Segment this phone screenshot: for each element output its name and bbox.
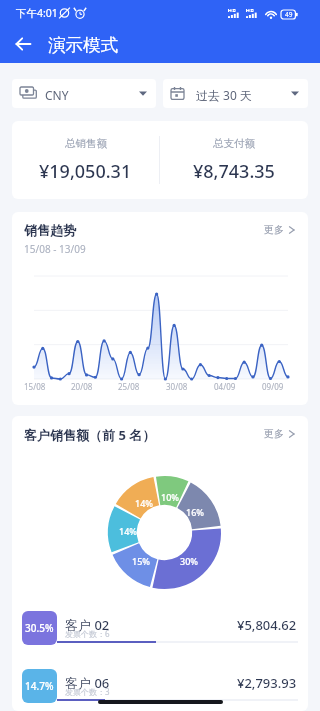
staticText: 49 bbox=[285, 10, 293, 19]
button[interactable]: 总支付额 bbox=[160, 137, 308, 184]
staticText: 更多 bbox=[264, 427, 284, 440]
staticText: 15% bbox=[132, 555, 150, 567]
button[interactable]: 销售趋势 bbox=[12, 212, 308, 256]
staticText: ¥8,743.35 bbox=[193, 159, 275, 184]
staticText: 过去 30 天 bbox=[196, 87, 252, 103]
staticText: 30.5% bbox=[25, 621, 54, 635]
staticText: 10% bbox=[161, 491, 179, 503]
button[interactable]: CNY bbox=[12, 79, 156, 108]
staticText: 30% bbox=[180, 555, 198, 567]
staticText: 15/08 - 13/09 bbox=[24, 242, 86, 256]
staticText: 04/09 bbox=[214, 381, 236, 392]
button[interactable]: 过去 30 天 bbox=[163, 79, 308, 108]
staticText: 更多 bbox=[264, 223, 284, 236]
staticText: ¥2,793.93 bbox=[237, 674, 297, 692]
staticText: 25/08 bbox=[118, 381, 140, 392]
staticText: 30/08 bbox=[166, 381, 188, 392]
staticText: CNY bbox=[45, 87, 69, 103]
staticText: 总支付额 bbox=[213, 137, 255, 150]
staticText: 总销售额 bbox=[65, 137, 107, 150]
button[interactable]: 14.7% bbox=[12, 660, 308, 711]
button[interactable]: 客户销售额（前 5 名） bbox=[12, 416, 308, 444]
button[interactable]: 总销售额 bbox=[12, 137, 159, 184]
staticText: 发票个数：6 bbox=[65, 628, 110, 639]
button[interactable]: 30.5% bbox=[12, 602, 308, 653]
staticText: 20/08 bbox=[71, 381, 93, 392]
staticText: 14% bbox=[135, 497, 153, 509]
staticText: 下午4:01 bbox=[16, 6, 58, 20]
staticText: 客户销售额（前 5 名） bbox=[24, 426, 156, 444]
staticText: ¥19,050.31 bbox=[39, 159, 132, 184]
staticText: 14.7% bbox=[25, 679, 54, 693]
staticText: 客户 02 bbox=[65, 616, 110, 634]
staticText: 14% bbox=[119, 525, 137, 537]
staticText: 16% bbox=[186, 506, 204, 518]
staticText: 演示模式 bbox=[48, 34, 118, 56]
staticText: 15/08 bbox=[24, 381, 46, 392]
staticText: 销售趋势 bbox=[24, 222, 76, 238]
staticText: 客户 06 bbox=[65, 674, 110, 692]
staticText: 发票个数：3 bbox=[65, 686, 110, 697]
button[interactable]: 返回 bbox=[6, 27, 40, 61]
staticText: ¥5,804.62 bbox=[237, 616, 297, 634]
staticText: 09/09 bbox=[262, 381, 284, 392]
